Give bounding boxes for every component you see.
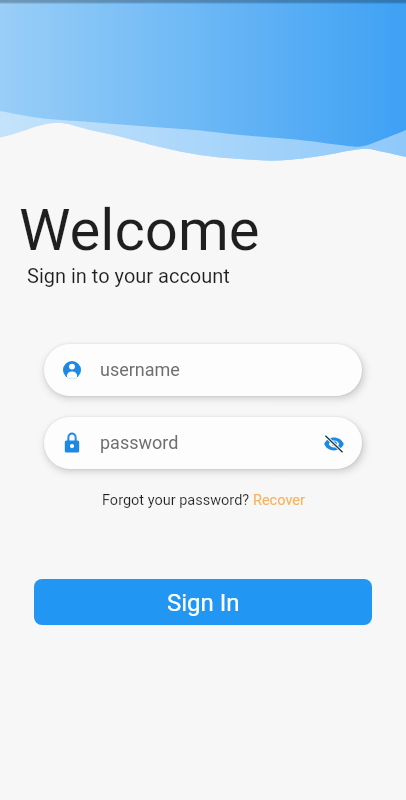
staticText: username [100, 359, 180, 380]
button[interactable]: Show password [316, 417, 360, 469]
staticText: Welcome [19, 196, 260, 264]
button[interactable]: Sign In [34, 579, 372, 625]
staticText: Sign In [167, 589, 240, 617]
staticText: Sign in to your account [27, 264, 230, 287]
button[interactable]: password [44, 417, 362, 469]
staticText: Forgot your password? [102, 492, 253, 509]
button[interactable]: username [44, 344, 362, 396]
staticText: Recover [253, 492, 305, 509]
staticText: password [100, 432, 179, 453]
button[interactable]: Recover [253, 492, 305, 509]
